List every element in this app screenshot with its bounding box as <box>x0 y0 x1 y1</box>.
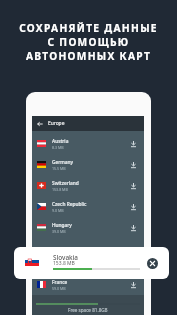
button[interactable]: Back <box>37 121 43 127</box>
button[interactable]: Austria <box>32 133 144 154</box>
button[interactable]: Download Switzerland <box>128 180 139 191</box>
staticText: 8.3 MB <box>52 145 64 150</box>
button[interactable]: Slovakia <box>32 238 144 274</box>
staticText: Hungary <box>52 222 72 229</box>
staticText: СОХРАНЯЙТЕ ДАННЫЕ С ПОМОЩЬЮ АВТОНОМНЫХ К… <box>19 21 158 63</box>
staticText: Switzerland <box>52 180 79 187</box>
button[interactable]: Cancel download <box>147 258 158 269</box>
staticText: 59.0 MB <box>52 286 66 291</box>
button[interactable]: Download Czech Republic <box>128 201 139 212</box>
staticText: 9.0 MB <box>52 208 64 213</box>
button[interactable]: Hungary <box>32 217 144 238</box>
staticText: 153.8 MB <box>52 187 68 192</box>
button[interactable]: Czech Republic <box>32 196 144 217</box>
staticText: Slovakia <box>52 250 71 257</box>
button[interactable]: Download Austria <box>128 138 139 149</box>
staticText: Germany <box>52 159 74 166</box>
staticText: Free space 81.8GB <box>68 307 108 313</box>
staticText: Austria <box>52 138 69 145</box>
staticText: 153.8 MB <box>52 257 68 262</box>
button[interactable]: Download Hungary <box>128 222 139 233</box>
button[interactable]: Download Germany <box>128 159 139 170</box>
staticText: 39.0 MB <box>52 229 66 234</box>
button[interactable]: Back <box>32 116 144 131</box>
button[interactable]: Switzerland <box>32 175 144 196</box>
staticText: Europe <box>48 120 65 127</box>
staticText: 153.8 MB <box>53 260 75 267</box>
staticText: Czech Republic <box>52 201 87 208</box>
button[interactable]: Download France <box>128 279 139 290</box>
staticText: 15.5 MB <box>52 166 66 171</box>
staticText: France <box>52 279 68 286</box>
button[interactable]: Slovakia <box>14 247 169 279</box>
button[interactable]: Germany <box>32 154 144 175</box>
staticText: Slovakia <box>53 253 78 262</box>
button[interactable]: France <box>32 274 144 295</box>
